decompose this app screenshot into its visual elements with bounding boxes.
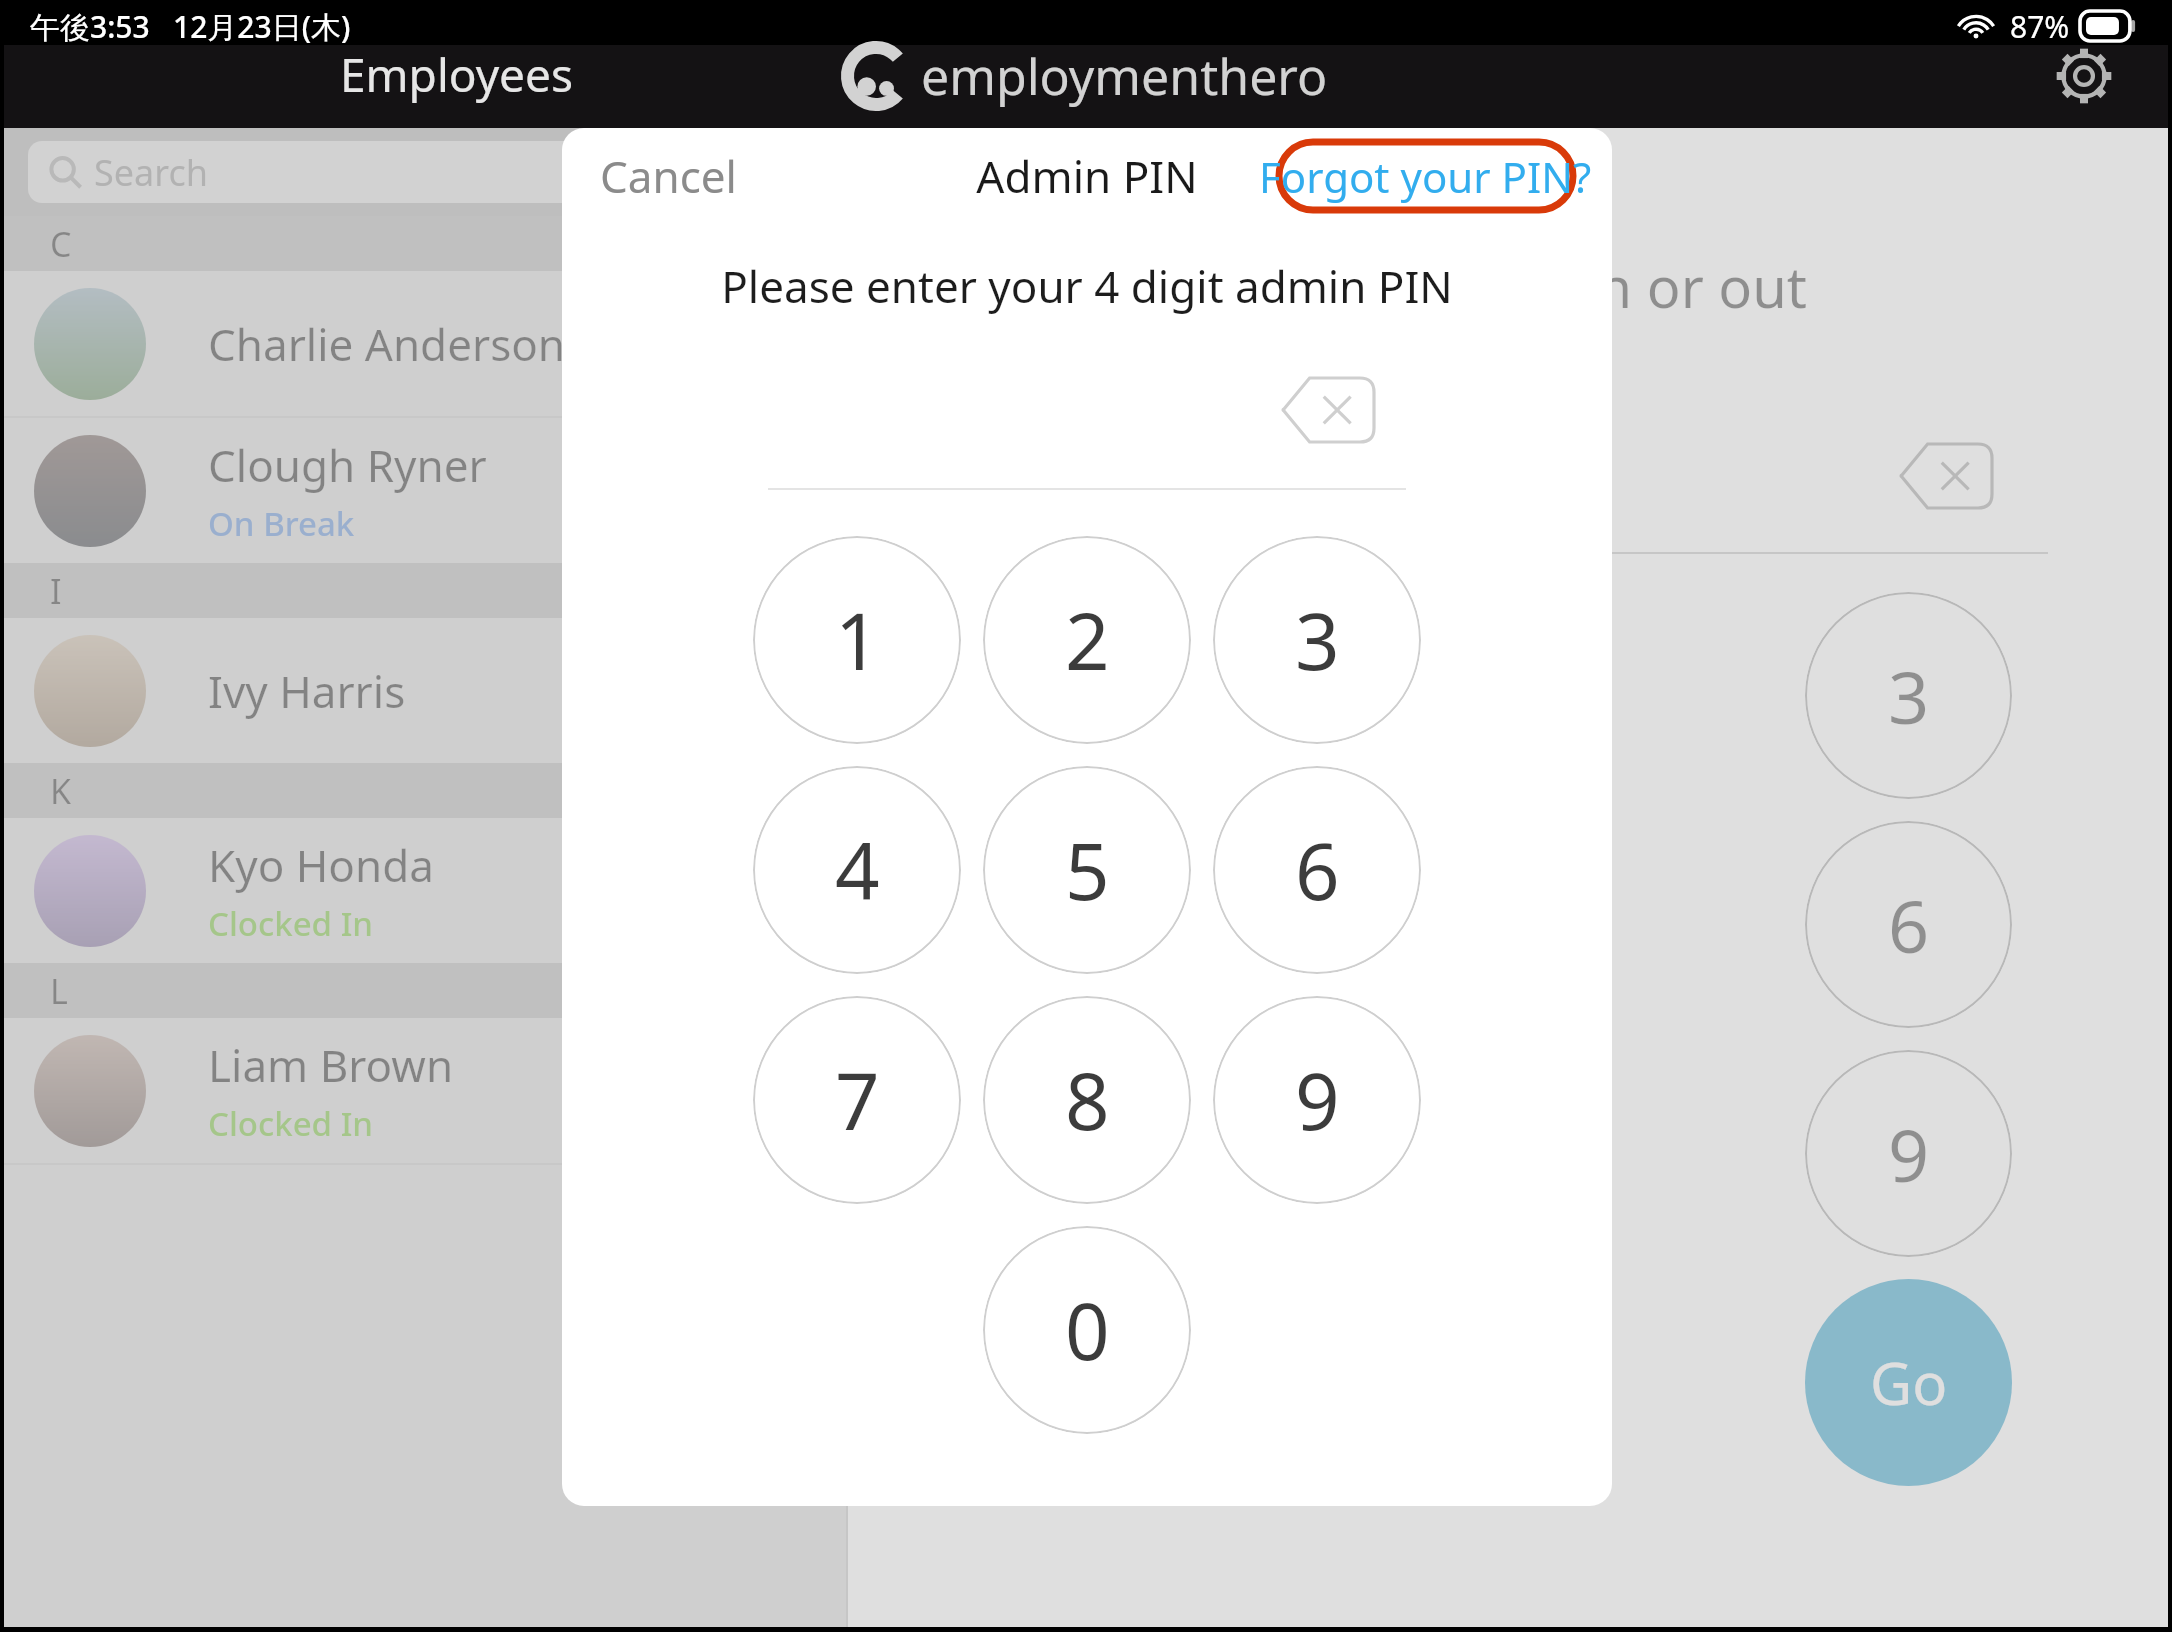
button[interactable]: 2 (983, 536, 1191, 744)
staticText: Kyo Honda (208, 835, 434, 895)
button[interactable]: 6 (1213, 766, 1421, 974)
button[interactable]: Ivy Harris (4, 618, 846, 763)
staticText: Please enter your 4 digit admin PIN (562, 256, 1612, 316)
staticText: Liam Brown (208, 1035, 454, 1095)
button[interactable]: 4 (753, 766, 961, 974)
button[interactable]: Settings (2046, 38, 2122, 114)
staticText: 87% (2010, 6, 2070, 47)
staticText: 3 (1295, 587, 1340, 693)
staticText: Forgot your PIN? (1259, 148, 1592, 205)
button[interactable]: Forgot your PIN? (1259, 139, 1592, 213)
button[interactable]: 3 (1805, 592, 2012, 799)
button[interactable]: Clough Ryner (4, 418, 846, 563)
staticText: employmenthero (921, 42, 1328, 110)
staticText: I (50, 568, 62, 614)
button[interactable]: Kyo Honda (4, 818, 846, 963)
staticText: 2 (1065, 587, 1110, 693)
staticText: 9 (1888, 1105, 1930, 1203)
staticText: K (50, 768, 72, 814)
staticText: 午後3:53 12月23日(木) (30, 6, 351, 47)
staticText: Ivy Harris (208, 661, 406, 721)
button[interactable]: 1 (753, 536, 961, 744)
staticText: 9 (1295, 1047, 1340, 1153)
staticText: On Break (208, 501, 355, 546)
staticText: 5 (1065, 817, 1110, 923)
button[interactable]: 9 (1805, 1050, 2012, 1257)
staticText: 6 (1888, 876, 1930, 974)
button[interactable]: Liam Brown (4, 1018, 846, 1163)
staticText: 7 (835, 1047, 880, 1153)
staticText: C (50, 221, 72, 267)
button[interactable]: 6 (1805, 821, 2012, 1028)
button[interactable]: Go (1805, 1279, 2012, 1486)
button[interactable]: 0 (983, 1226, 1191, 1434)
staticText: Go (1870, 1343, 1948, 1422)
button[interactable]: 8 (983, 996, 1191, 1204)
staticText: Clocked In (208, 901, 374, 946)
staticText: Enter your PIN to clock in or out (968, 248, 2168, 324)
button[interactable]: Cancel (562, 136, 757, 216)
staticText: L (50, 968, 68, 1014)
button[interactable]: Charlie Anderson (4, 271, 846, 416)
staticText: or select your name from the list (968, 350, 2168, 404)
button[interactable]: Search (28, 141, 822, 203)
staticText: 1 (835, 587, 880, 693)
staticText: Search (94, 148, 208, 197)
staticText: Admin PIN (976, 146, 1198, 206)
button[interactable]: 7 (753, 996, 961, 1204)
staticText: Clough Ryner (208, 435, 487, 495)
button[interactable]: 5 (983, 766, 1191, 974)
button[interactable]: 3 (1213, 536, 1421, 744)
staticText: Employees (340, 43, 574, 106)
staticText: Charlie Anderson (208, 314, 566, 374)
staticText: 8 (1065, 1047, 1110, 1153)
button[interactable]: 9 (1213, 996, 1421, 1204)
staticText: 6 (1295, 817, 1340, 923)
button[interactable]: Delete (1272, 368, 1384, 452)
staticText: 3 (1888, 647, 1930, 745)
staticText: Clocked In (208, 1101, 374, 1146)
staticText: 4 (835, 817, 880, 923)
staticText: 0 (1065, 1277, 1110, 1383)
